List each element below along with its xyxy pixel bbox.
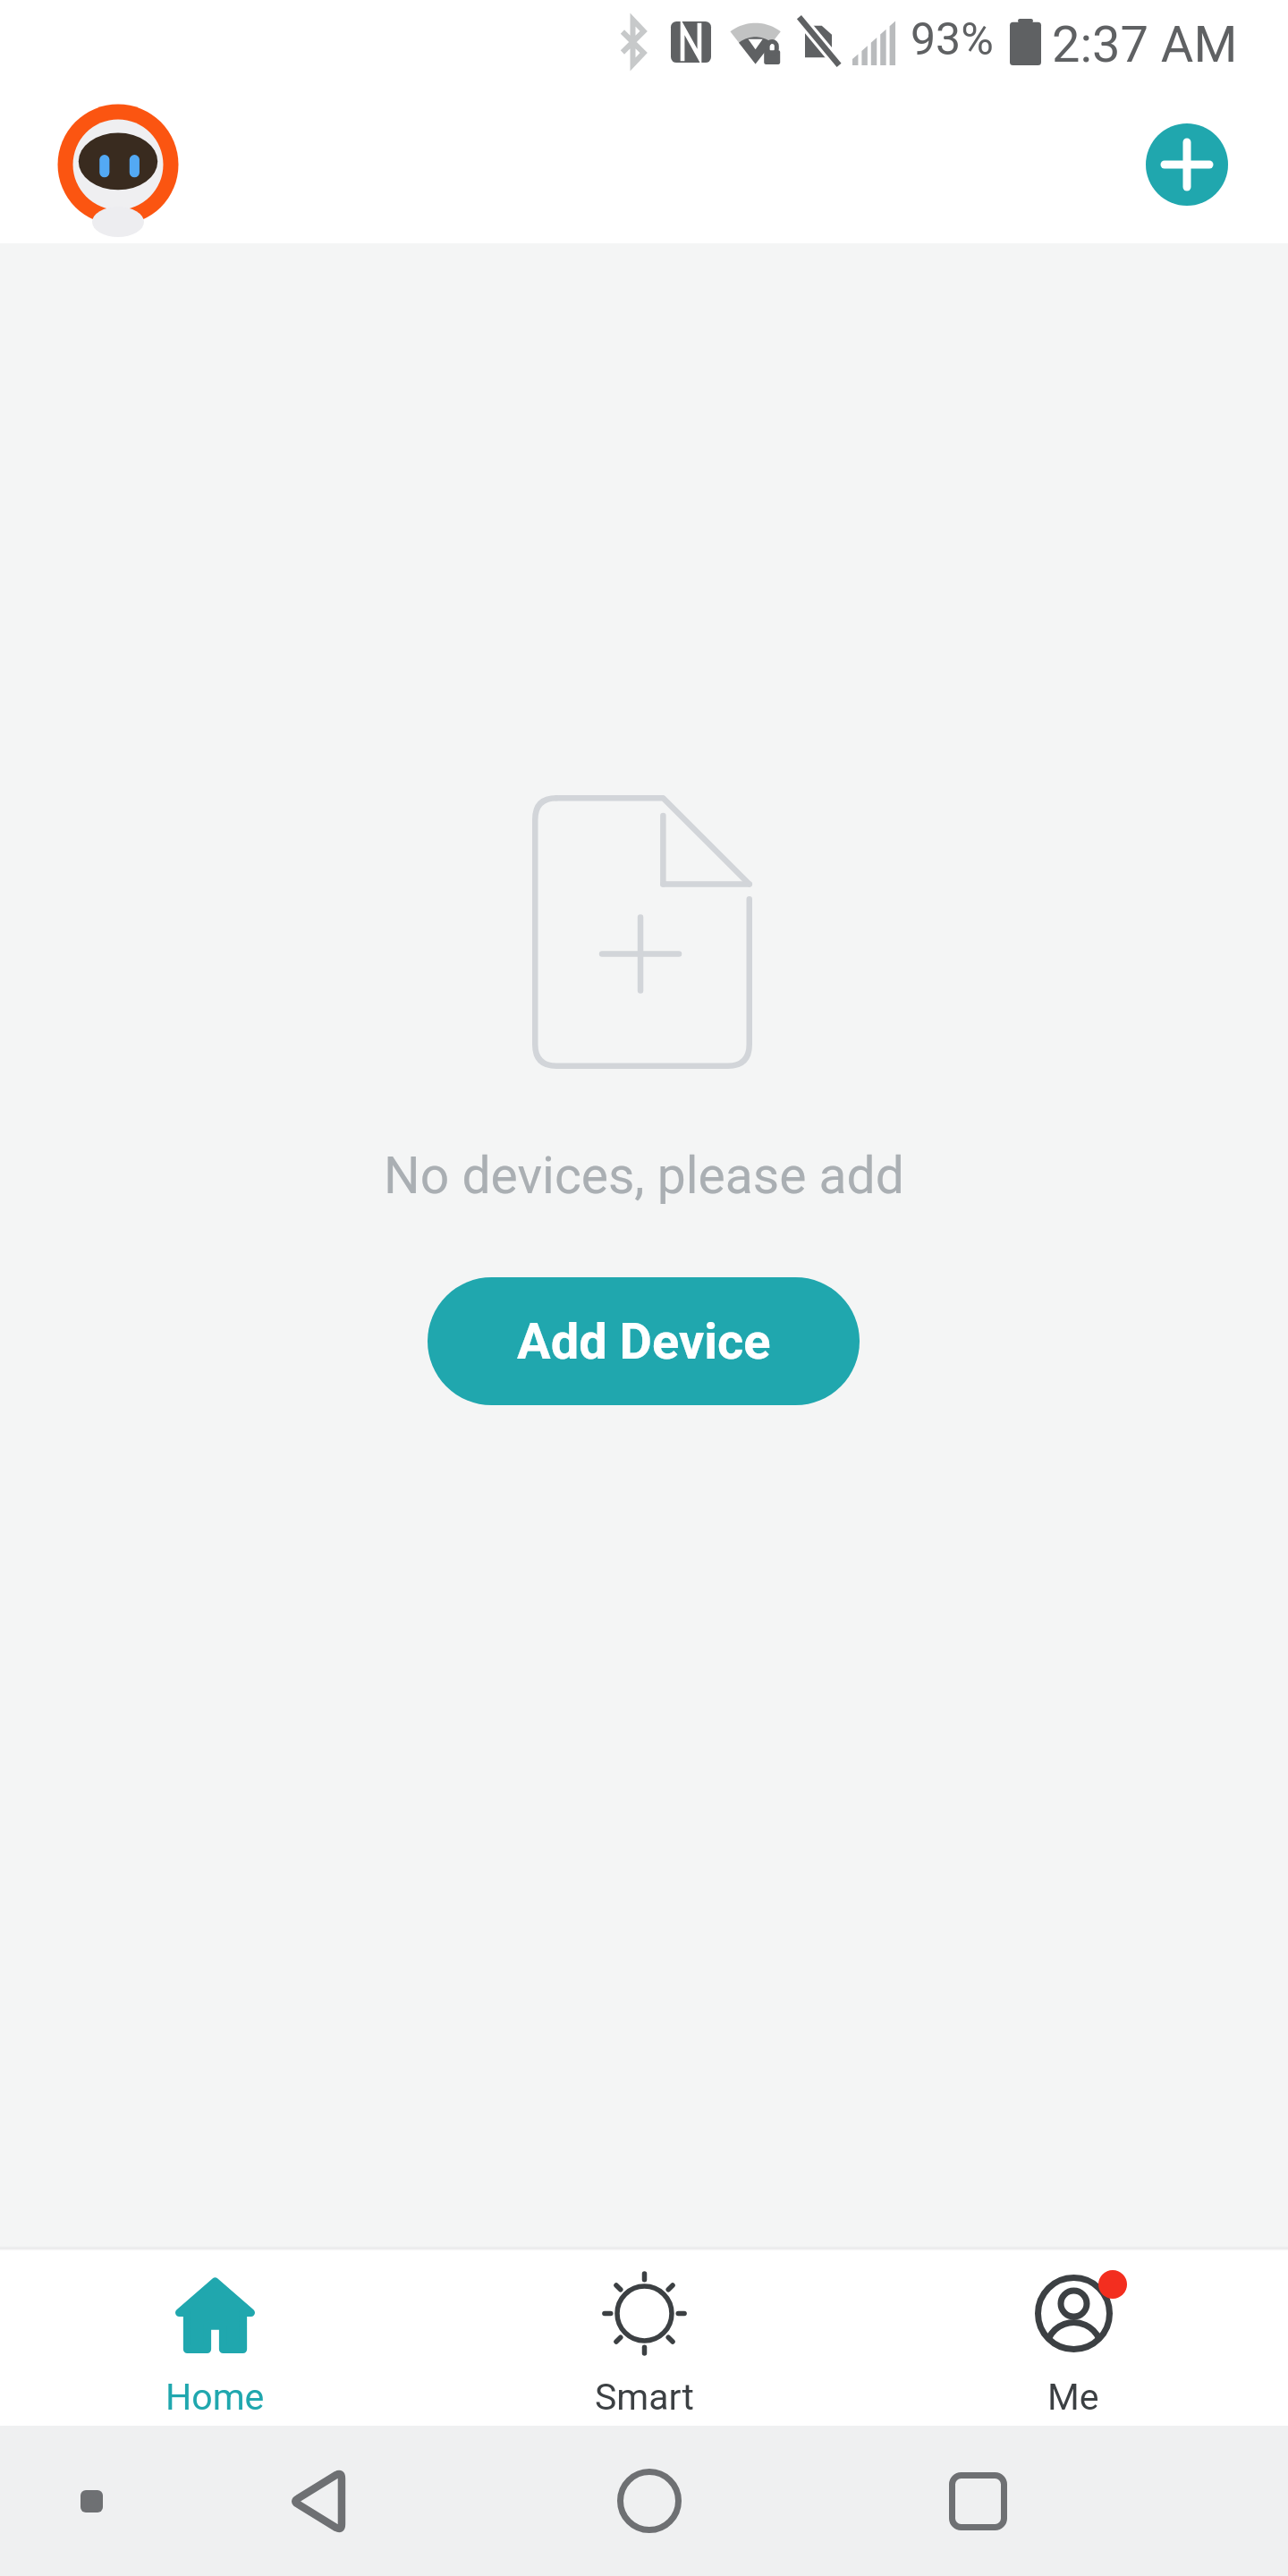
staticText: 93%: [911, 13, 994, 66]
button[interactable]: Me: [859, 2250, 1288, 2419]
button[interactable]: Profile: [52, 98, 184, 231]
staticText: Home: [165, 2376, 265, 2419]
button[interactable]: Recent apps: [933, 2456, 1022, 2546]
staticText: Add Device: [517, 1312, 771, 1371]
button[interactable]: Home: [0, 2250, 429, 2419]
button[interactable]: Add device: [1146, 123, 1228, 206]
button[interactable]: Add Device: [428, 1277, 860, 1405]
staticText: Smart: [595, 2376, 694, 2419]
button[interactable]: Smart: [429, 2250, 859, 2419]
staticText: Me: [1047, 2376, 1099, 2419]
staticText: 2:37 AM: [1052, 15, 1238, 74]
button[interactable]: Home: [605, 2456, 694, 2546]
button[interactable]: Back: [270, 2454, 363, 2547]
staticText: No devices, please add: [0, 1146, 1288, 1206]
button[interactable]: Hide keyboard: [55, 2465, 127, 2537]
